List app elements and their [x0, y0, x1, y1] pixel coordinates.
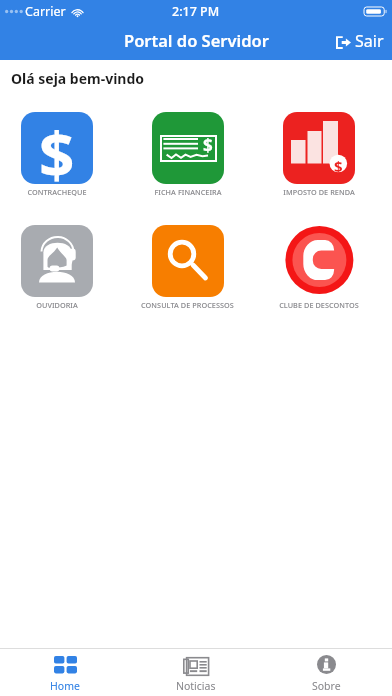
button[interactable]: Sair [330, 28, 392, 56]
button[interactable]: OUVIDORIA [0, 225, 122, 310]
button[interactable]: CONSULTA DE PROCESSOS [122, 225, 253, 310]
staticText: CONSULTA DE PROCESSOS [141, 300, 234, 310]
staticText: $ [39, 112, 75, 184]
staticText: $ [203, 134, 213, 157]
staticText: $ [334, 156, 343, 176]
button[interactable]: CLUBE DE DESCONTOS [253, 225, 384, 310]
staticText: IMPOSTO DE RENDA [283, 187, 355, 197]
staticText: Portal do Servidor [124, 29, 269, 51]
button[interactable]: Noticias [130, 649, 261, 696]
staticText: 2:17 PM [172, 3, 220, 20]
staticText: Olá seja bem-vindo [11, 69, 145, 88]
other: Sair [336, 35, 351, 48]
button[interactable]: $ [122, 112, 253, 197]
staticText: CLUBE DE DESCONTOS [279, 300, 359, 310]
button[interactable]: $ [0, 112, 122, 197]
staticText: CONTRACHEQUE [27, 187, 87, 197]
staticText: OUVIDORIA [36, 300, 78, 310]
button[interactable]: Sobre [261, 649, 392, 696]
staticText: Home [50, 679, 80, 693]
staticText: Noticias [176, 679, 216, 693]
staticText: FICHA FINANCEIRA [154, 187, 222, 197]
staticText: Sair [355, 30, 384, 52]
button[interactable]: Home [0, 649, 130, 696]
staticText: Sobre [312, 679, 341, 693]
staticText: Carrier [25, 3, 66, 20]
button[interactable]: $ [253, 112, 384, 197]
